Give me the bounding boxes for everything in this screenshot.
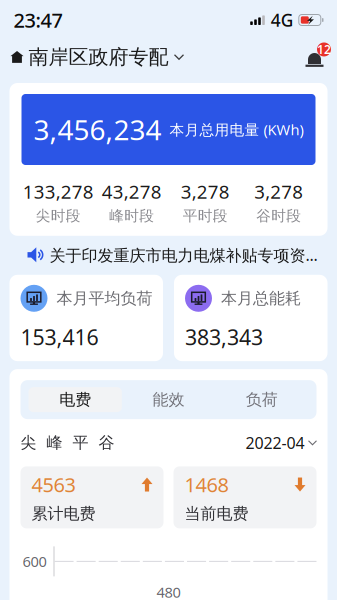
button[interactable]: 电费 — [28, 387, 122, 412]
staticText: 本月总用电量 (KWh) — [169, 120, 303, 139]
staticText: 峰 — [46, 433, 62, 453]
staticText: 平时段 — [183, 207, 228, 225]
staticText: 133,278 — [23, 179, 94, 204]
staticText: 谷时段 — [256, 207, 301, 225]
staticText: 累计电费 — [31, 504, 95, 523]
staticText: 12 — [317, 41, 331, 57]
staticText: 23:47 — [13, 7, 62, 33]
staticText: 4563 — [31, 471, 75, 498]
staticText: 43,278 — [102, 179, 162, 204]
staticText: 600 — [22, 552, 46, 571]
staticText: 3,278 — [254, 179, 303, 204]
button[interactable]: 南岸区政府专配 — [10, 45, 183, 69]
button[interactable]: 关于印发重庆市电力电煤补贴专项资金管理... — [0, 242, 337, 268]
staticText: 平 — [72, 433, 88, 453]
staticText: 本月平均负荷 — [56, 288, 152, 308]
staticText: 南岸区政府专配 — [28, 45, 168, 69]
button[interactable]: Alarms — [302, 45, 326, 69]
staticText: 153,416 — [20, 323, 98, 351]
staticText: 4G — [271, 8, 294, 31]
button[interactable]: 2022-04 — [245, 432, 316, 453]
button[interactable]: 负荷 — [215, 387, 308, 412]
staticText: 480 — [156, 582, 180, 600]
staticText: 谷 — [98, 433, 114, 453]
staticText: 电费 — [59, 390, 91, 409]
staticText: 尖时段 — [36, 207, 81, 225]
staticText: 3,278 — [181, 179, 230, 204]
staticText: 3,456,234 — [33, 111, 161, 148]
staticText: 当前电费 — [184, 504, 248, 523]
staticText: 383,343 — [185, 323, 263, 351]
staticText: 本月总能耗 — [221, 288, 301, 308]
staticText: 1468 — [184, 471, 228, 498]
staticText: 2022-04 — [245, 432, 304, 453]
staticText: 峰时段 — [109, 207, 154, 225]
staticText: 能效 — [152, 390, 184, 409]
staticText: 关于印发重庆市电力电煤补贴专项资金管理... — [49, 244, 329, 265]
staticText: 负荷 — [246, 390, 278, 409]
staticText: 尖 — [20, 433, 36, 453]
button[interactable]: 能效 — [122, 387, 215, 412]
